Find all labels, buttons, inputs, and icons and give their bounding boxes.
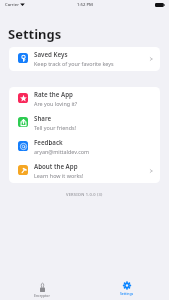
button[interactable]: Feedback	[9, 135, 160, 159]
button[interactable]: Share	[9, 111, 160, 135]
staticText: Share	[34, 114, 52, 122]
staticText: Settings	[8, 25, 62, 43]
staticText: About the App	[34, 162, 78, 170]
staticText: VERSION 1.0.0 (3)	[66, 192, 103, 197]
staticText: Carrier	[5, 2, 19, 8]
staticText: aryan@mittaldev.com	[34, 148, 90, 155]
staticText: Rate the App	[34, 90, 73, 98]
staticText: Tell your friends!	[34, 124, 77, 131]
staticText: Are you loving it?	[34, 100, 78, 107]
staticText: Encryptor	[34, 293, 50, 298]
button[interactable]: Encryptor	[22, 266, 62, 300]
button[interactable]: Saved Keys	[9, 47, 160, 71]
staticText: 1:52 PM	[77, 2, 93, 8]
button[interactable]: Rate the App	[9, 87, 160, 111]
button[interactable]: About the App	[9, 159, 160, 183]
button[interactable]: Settings	[108, 266, 146, 298]
staticText: Settings	[120, 291, 134, 296]
staticText: Learn how it works!	[34, 172, 84, 179]
staticText: Feedback	[34, 138, 63, 146]
staticText: Saved Keys	[34, 50, 68, 58]
staticText: Keep track of your favorite keys	[34, 60, 114, 67]
